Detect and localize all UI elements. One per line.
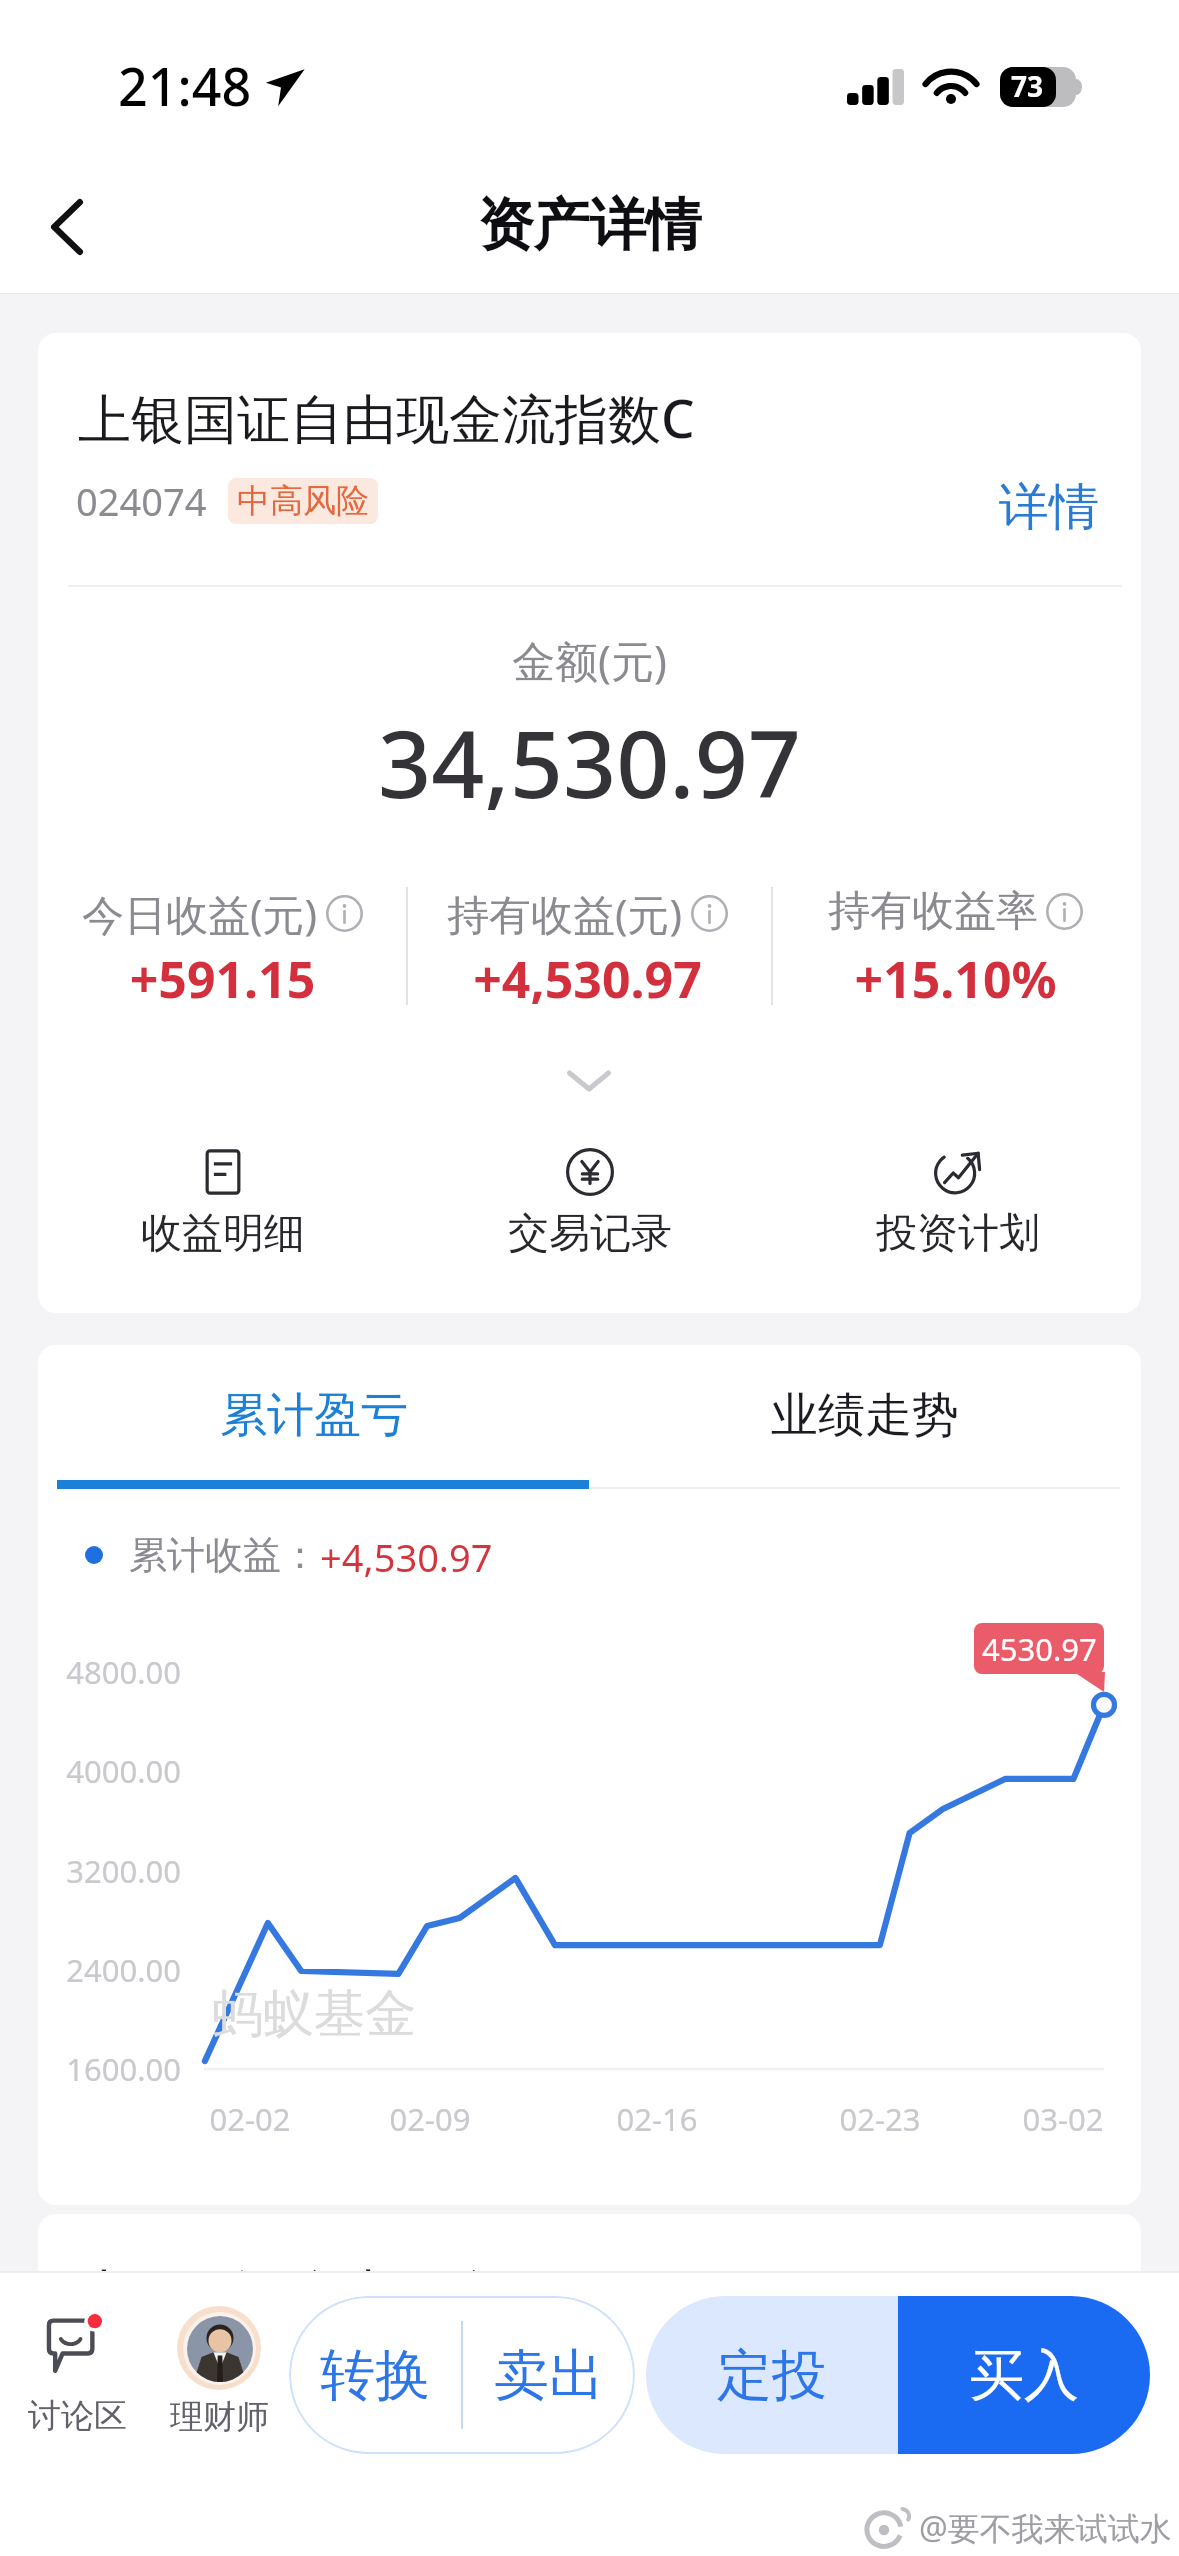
staticText: 21:48 — [118, 50, 252, 121]
button[interactable]: 持有收益率 — [771, 879, 1140, 1029]
button[interactable]: 业绩走势 — [589, 1349, 1140, 1482]
button[interactable]: 交易记录 — [405, 1148, 774, 1260]
button[interactable]: 理财师 — [160, 2306, 278, 2438]
staticText: 02-23 — [800, 2098, 960, 2140]
staticText: 持有收益率 — [828, 885, 1038, 938]
button[interactable]: 讨论区 — [18, 2315, 136, 2437]
staticText: 024074 — [76, 475, 207, 527]
staticText: +15.10% — [771, 945, 1140, 1013]
staticText: 资产详情 — [0, 190, 1179, 261]
staticText: 定投 — [717, 2341, 827, 2410]
button[interactable]: Back — [3, 163, 131, 291]
staticText: 业绩走势 — [771, 1386, 959, 1445]
staticText: @要不我来试试水 — [919, 2506, 1172, 2550]
staticText: 4000.00 — [38, 1750, 181, 1792]
button[interactable]: 收益明细 — [38, 1148, 407, 1260]
staticText: 上银国证自由现金 — [78, 2262, 502, 2329]
staticText: +591.15 — [38, 945, 407, 1013]
staticText: 2400.00 — [38, 1949, 181, 1991]
staticText: 02-02 — [170, 2098, 330, 2140]
button[interactable]: 卖出 — [463, 2296, 635, 2454]
staticText: 投资计划 — [876, 1208, 1040, 1260]
button[interactable]: 定投 — [646, 2296, 898, 2454]
button[interactable]: Expand — [489, 1045, 689, 1121]
staticText: +4,530.97 — [320, 1531, 493, 1579]
staticText: 详情 — [999, 476, 1099, 539]
staticText: 上银国证自由现金流指数C — [78, 381, 695, 453]
staticText: 卖出 — [494, 2341, 604, 2410]
staticText: 累计收益： — [129, 1531, 319, 1579]
staticText: 持有收益(元) — [447, 885, 683, 942]
staticText: 交易记录 — [508, 1208, 672, 1260]
staticText: 02-16 — [577, 2098, 737, 2140]
staticText: 4530.97 — [982, 1628, 1097, 1670]
staticText: 蚂蚁基金 — [212, 1982, 416, 2046]
staticText: 34,530.97 — [38, 699, 1141, 826]
button[interactable]: 详情 — [986, 467, 1112, 547]
staticText: +4,530.97 — [403, 945, 772, 1013]
staticText: 累计盈亏 — [220, 1386, 408, 1445]
staticText: 3200.00 — [38, 1850, 181, 1892]
staticText: 讨论区 — [28, 2395, 127, 2437]
staticText: 73 — [1011, 67, 1044, 105]
button[interactable]: 买入 — [898, 2296, 1150, 2454]
staticText: 中高风险 — [237, 480, 369, 522]
staticText: 4800.00 — [38, 1651, 181, 1693]
staticText: 买入 — [969, 2341, 1079, 2410]
button[interactable]: 今日收益(元) — [38, 879, 407, 1029]
button[interactable]: 转换 — [289, 2296, 461, 2454]
staticText: 03-02 — [983, 2098, 1141, 2140]
staticText: 今日收益(元) — [82, 885, 318, 942]
staticText: 转换 — [320, 2341, 430, 2410]
staticText: 理财师 — [170, 2396, 269, 2438]
staticText: 收益明细 — [141, 1208, 305, 1260]
button[interactable]: 累计盈亏 — [38, 1349, 589, 1482]
button[interactable]: 投资计划 — [773, 1148, 1141, 1260]
button[interactable]: 持有收益(元) — [403, 879, 772, 1029]
staticText: 02-09 — [350, 2098, 510, 2140]
staticText: 1600.00 — [38, 2048, 181, 2090]
staticText: 金额(元) — [38, 631, 1141, 690]
